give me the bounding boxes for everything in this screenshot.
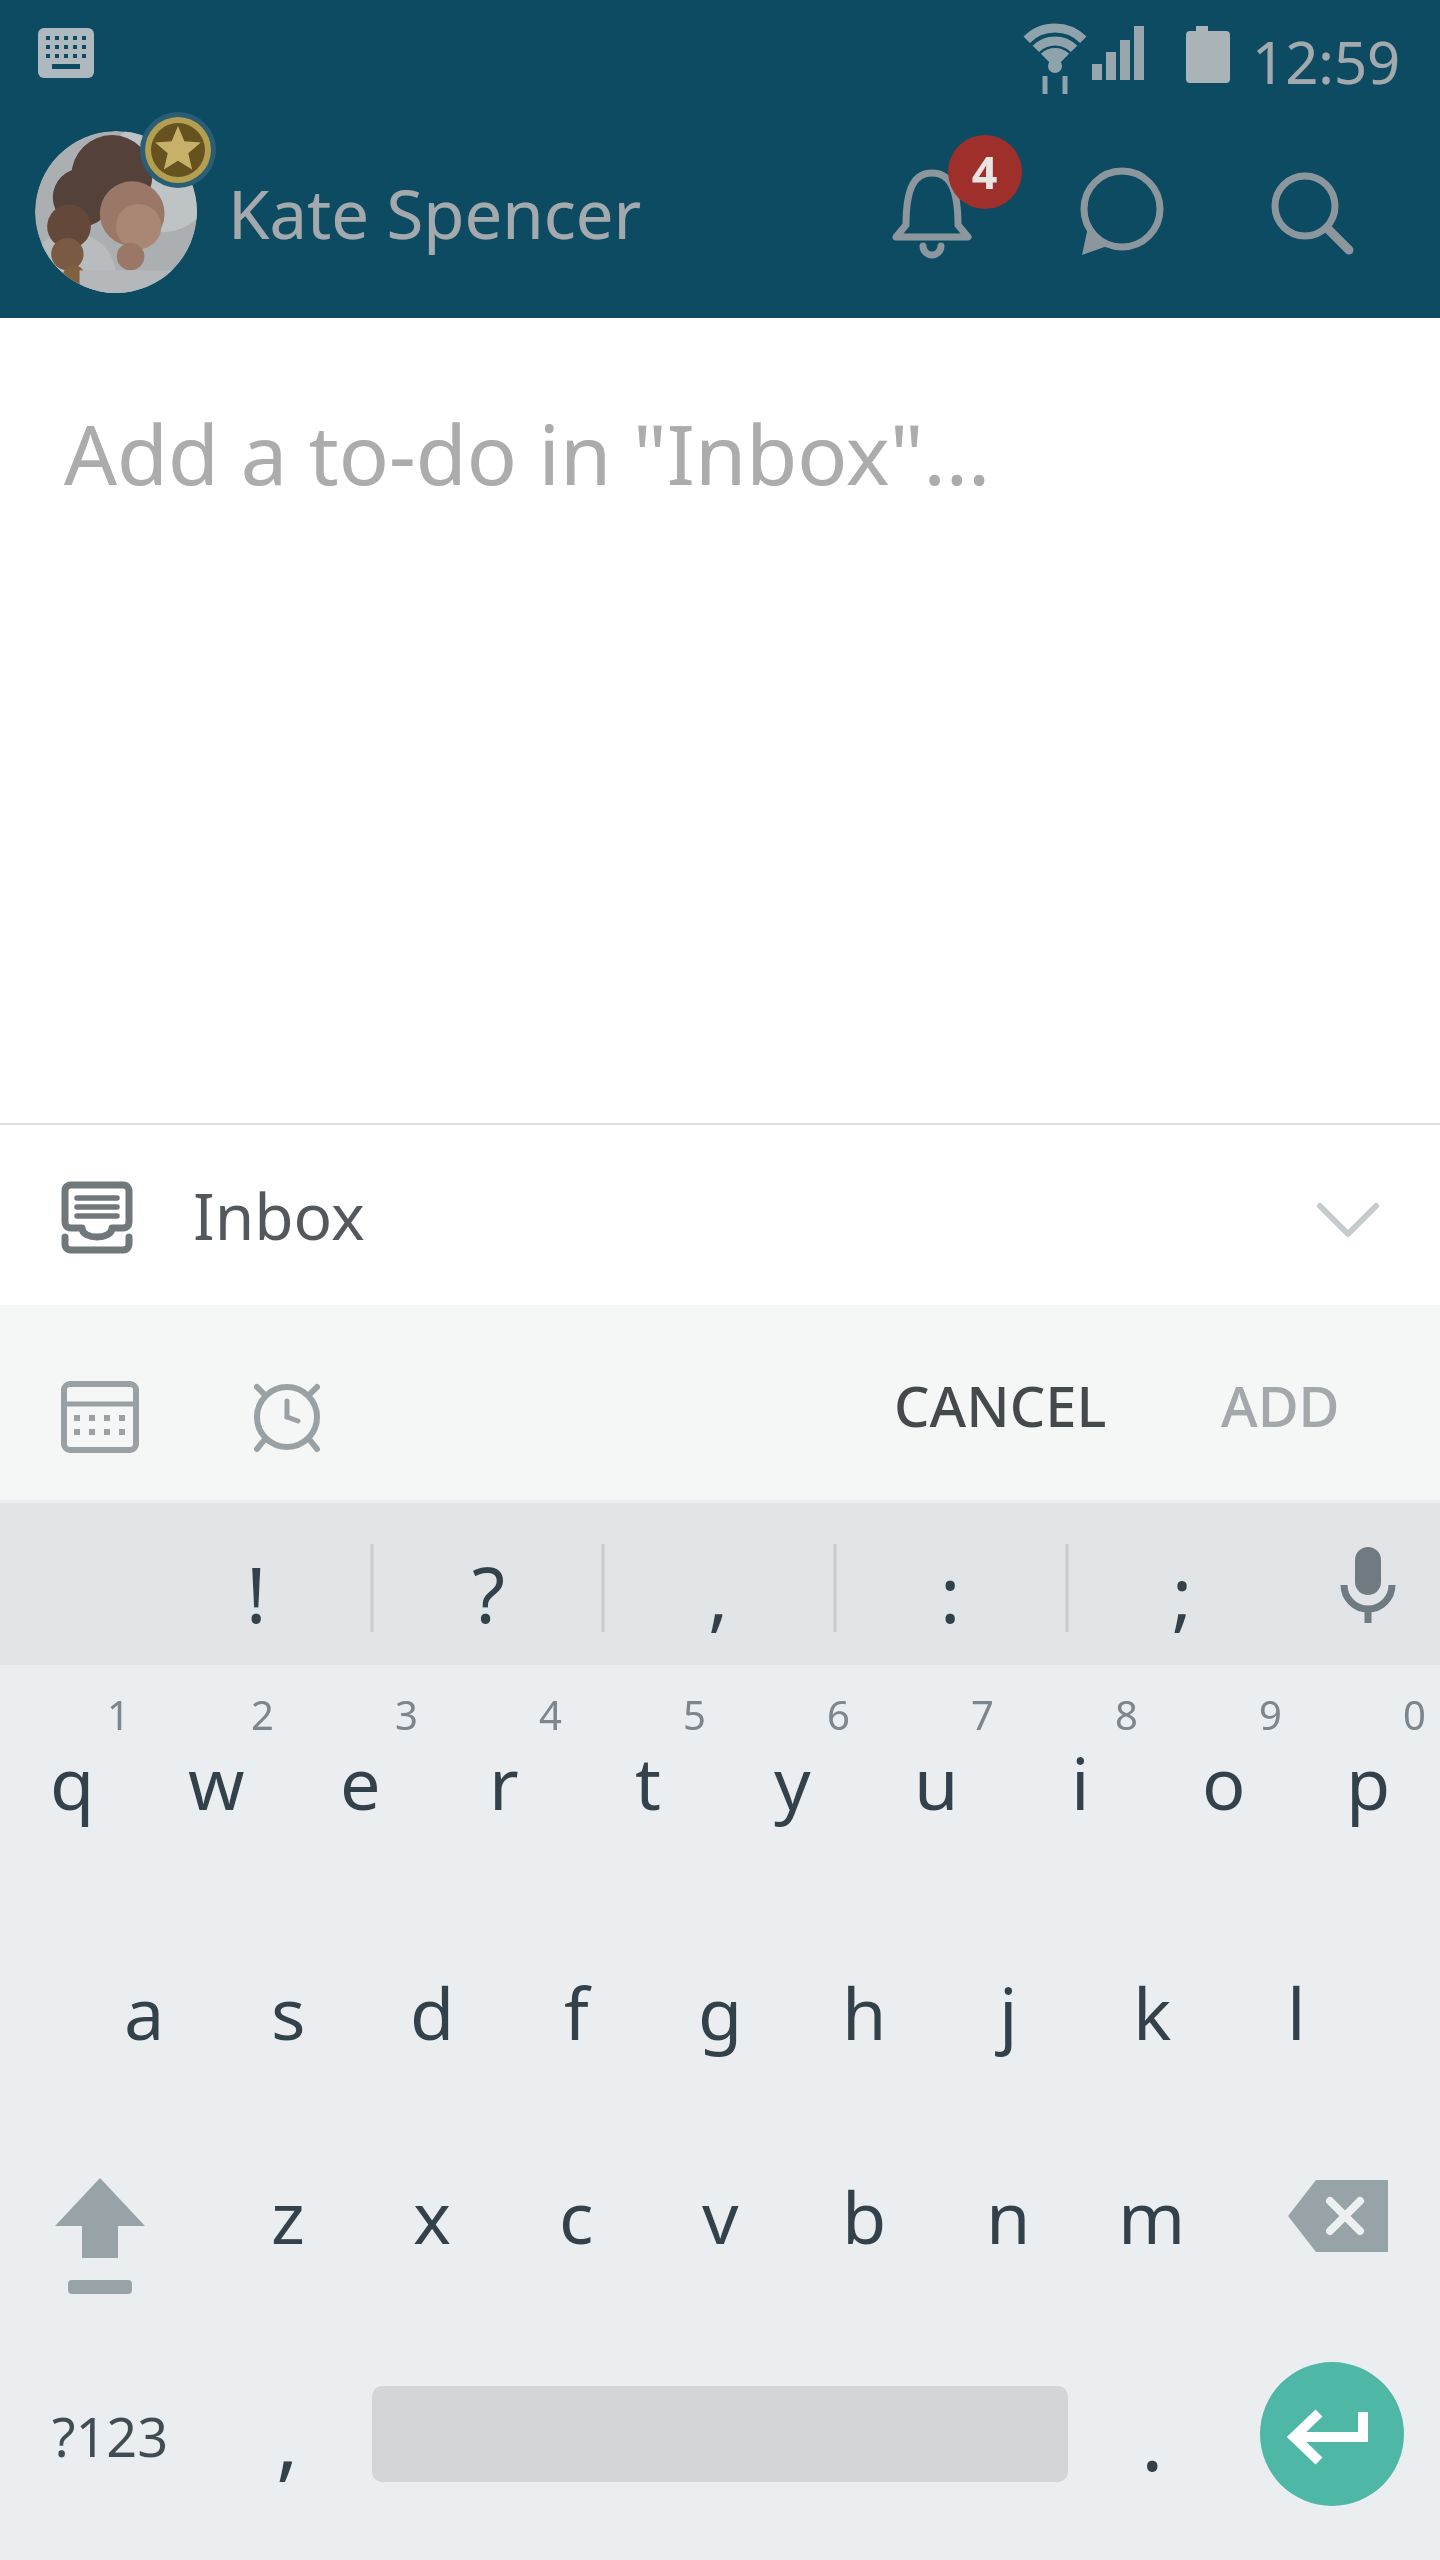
staticText: q [50, 1733, 95, 1831]
staticText: e [340, 1733, 381, 1831]
button[interactable]: Kate Spencer [228, 152, 788, 272]
staticText: , [708, 1542, 729, 1646]
button[interactable]: ! [140, 1539, 372, 1649]
staticText: ? [472, 1542, 505, 1646]
button[interactable]: , [227, 2378, 347, 2498]
button[interactable]: q [0, 1722, 144, 1842]
staticText: s [271, 1963, 306, 2061]
staticText: z [271, 2167, 305, 2265]
staticText: c [559, 2167, 594, 2265]
button[interactable]: l [1224, 1952, 1368, 2072]
staticText: ?123 [52, 2399, 169, 2473]
button[interactable]: o [1152, 1722, 1296, 1842]
staticText: 6 [827, 1687, 850, 1741]
button[interactable]: , [602, 1539, 834, 1649]
button[interactable]: z [216, 2156, 360, 2276]
staticText: 4 [539, 1687, 562, 1741]
staticText: l [1287, 1963, 1306, 2061]
staticText: CANCEL [894, 1367, 1107, 1443]
staticText: : [940, 1542, 961, 1646]
button[interactable]: i [1008, 1722, 1152, 1842]
staticText: t [635, 1733, 661, 1831]
button[interactable]: h [792, 1952, 936, 2072]
button[interactable]: u [864, 1722, 1008, 1842]
staticText: m [1118, 2167, 1186, 2265]
staticText: a [124, 1963, 165, 2061]
button[interactable]: : [834, 1539, 1066, 1649]
button[interactable] [1260, 2362, 1404, 2506]
staticText: 8 [1115, 1687, 1138, 1741]
staticText: 12:59 [1252, 22, 1401, 101]
staticText: 4 [972, 142, 998, 202]
button[interactable]: m [1080, 2156, 1224, 2276]
staticText: u [914, 1733, 959, 1831]
button[interactable]: CANCEL [860, 1355, 1140, 1455]
button[interactable]: d [360, 1952, 504, 2072]
staticText: p [1346, 1733, 1391, 1831]
staticText: w [188, 1733, 245, 1831]
button[interactable] [1270, 2156, 1410, 2296]
button[interactable]: n [936, 2156, 1080, 2276]
staticText: j [999, 1963, 1018, 2061]
staticText: f [564, 1963, 589, 2061]
staticText: Kate Spencer [228, 167, 642, 258]
button[interactable]: p [1296, 1722, 1440, 1842]
staticText: Inbox [193, 1172, 365, 1259]
button[interactable]: x [360, 2156, 504, 2276]
button[interactable]: e [288, 1722, 432, 1842]
button[interactable]: b [792, 2156, 936, 2276]
staticText: g [698, 1963, 743, 2061]
staticText: v [702, 2167, 739, 2265]
staticText: r [489, 1733, 519, 1831]
staticText: . [1141, 2381, 1164, 2495]
button[interactable]: r [432, 1722, 576, 1842]
button[interactable]: g [648, 1952, 792, 2072]
staticText: ! [246, 1542, 267, 1646]
button[interactable]: v [648, 2156, 792, 2276]
button[interactable]: f [504, 1952, 648, 2072]
button[interactable]: ADD [1190, 1355, 1370, 1455]
staticText: h [842, 1963, 887, 2061]
button[interactable]: w [144, 1722, 288, 1842]
staticText: 9 [1259, 1687, 1282, 1741]
staticText: b [842, 2167, 887, 2265]
staticText: 3 [395, 1687, 418, 1741]
button[interactable]: ; [1066, 1539, 1298, 1649]
button[interactable]: t [576, 1722, 720, 1842]
button[interactable]: c [504, 2156, 648, 2276]
button[interactable]: a [72, 1952, 216, 2072]
button[interactable]: y [720, 1722, 864, 1842]
staticText: i [1071, 1733, 1090, 1831]
staticText: 5 [683, 1687, 706, 1741]
button[interactable]: ? [372, 1539, 604, 1649]
staticText: x [413, 2167, 452, 2265]
staticText: ADD [1221, 1367, 1340, 1443]
button[interactable]: j [936, 1952, 1080, 2072]
button[interactable] [40, 2156, 180, 2296]
staticText: 1 [107, 1687, 130, 1741]
button[interactable]: k [1080, 1952, 1224, 2072]
button[interactable]: ?123 [20, 2376, 200, 2496]
staticText: Add a to-do in "Inbox"... [64, 396, 991, 509]
staticText: d [410, 1963, 455, 2061]
staticText: 0 [1403, 1687, 1426, 1741]
button[interactable]: s [216, 1952, 360, 2072]
staticText: , [276, 2381, 299, 2495]
staticText: y [774, 1733, 811, 1831]
button[interactable]: Inbox [0, 1125, 1440, 1305]
staticText: 2 [251, 1687, 274, 1741]
button[interactable]: . [1092, 2378, 1212, 2498]
staticText: n [986, 2167, 1031, 2265]
staticText: o [1202, 1733, 1246, 1831]
staticText: 7 [971, 1687, 994, 1741]
staticText: ; [1172, 1542, 1193, 1646]
staticText: k [1133, 1963, 1172, 2061]
